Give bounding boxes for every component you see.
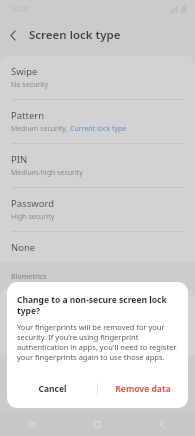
staticText: Swipe bbox=[11, 65, 38, 78]
staticText: Pattern bbox=[11, 109, 45, 122]
button[interactable]: PIN bbox=[0, 144, 195, 187]
button[interactable]: Cancel bbox=[7, 374, 97, 404]
staticText: Face bbox=[11, 298, 164, 311]
staticText: High security bbox=[11, 212, 55, 222]
staticText: Biometrics bbox=[11, 272, 47, 282]
staticText: Screen lock type bbox=[29, 27, 121, 43]
button[interactable]: None bbox=[0, 232, 195, 263]
staticText: PIN bbox=[11, 153, 28, 166]
button[interactable]: Fingerprints bbox=[0, 322, 195, 355]
staticText: Medium-high security bbox=[11, 168, 83, 178]
staticText: Password bbox=[11, 197, 54, 210]
staticText: Current lock type bbox=[70, 124, 127, 134]
button[interactable]: Swipe bbox=[0, 56, 195, 99]
staticText: Cancel bbox=[38, 383, 67, 395]
staticText: None bbox=[11, 241, 36, 254]
button[interactable]: Back bbox=[0, 22, 26, 48]
button[interactable]: Password bbox=[0, 188, 195, 231]
staticText: Medium security, bbox=[11, 124, 70, 134]
staticText: Fingerprints bbox=[11, 332, 164, 345]
button[interactable]: Face bbox=[0, 288, 195, 321]
button[interactable]: Pattern bbox=[0, 100, 195, 143]
staticText: 10:00 bbox=[11, 4, 29, 14]
staticText: Your fingerprints will be removed for yo… bbox=[17, 322, 180, 362]
staticText: No security bbox=[11, 80, 49, 90]
button[interactable]: Remove data bbox=[98, 374, 188, 404]
staticText: Change to a non-secure screen lock type? bbox=[17, 294, 178, 316]
staticText: Remove data bbox=[115, 383, 171, 395]
